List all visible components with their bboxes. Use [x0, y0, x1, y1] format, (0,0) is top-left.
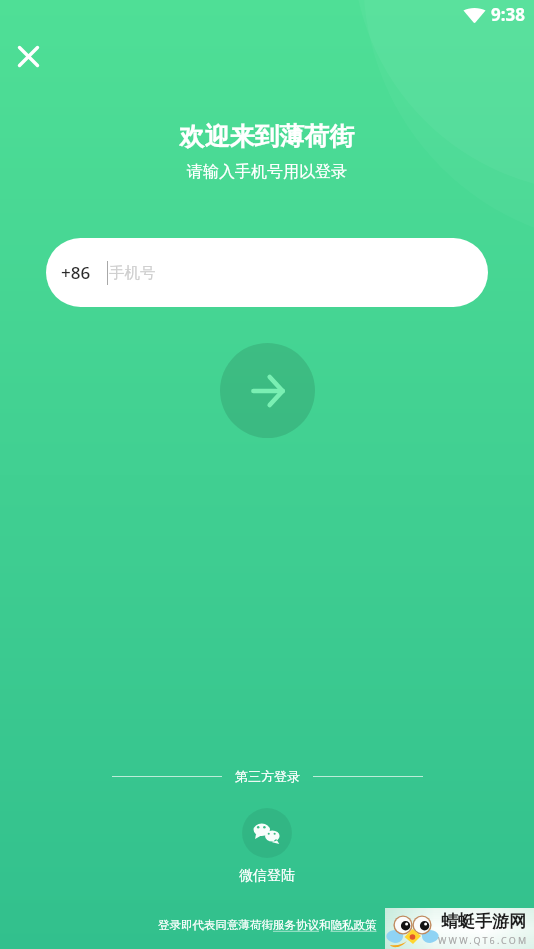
- button[interactable]: 登录即代表同意薄荷街服务协议和隐私政策: [158, 918, 377, 932]
- staticText: +86: [61, 261, 91, 284]
- staticText: 微信登陆: [239, 867, 295, 885]
- staticText: 请输入手机号用以登录: [0, 162, 534, 182]
- staticText: WWW.QT6.COM: [438, 934, 529, 946]
- button[interactable]: 微信登陆: [0, 808, 534, 885]
- staticText: 9:38: [491, 3, 525, 26]
- staticText: 欢迎来到薄荷街: [0, 121, 534, 152]
- button[interactable]: Close: [8, 36, 48, 76]
- staticText: 第三方登录: [235, 768, 300, 784]
- staticText: 手机号: [109, 263, 156, 283]
- button[interactable]: Next: [220, 343, 315, 438]
- button[interactable]: +86: [46, 238, 488, 307]
- staticText: 蜻蜓手游网: [441, 911, 526, 932]
